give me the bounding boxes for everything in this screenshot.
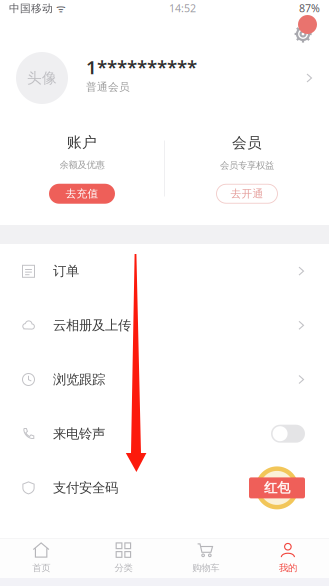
button[interactable]: 首页 bbox=[0, 538, 82, 578]
button[interactable]: 云相册及上传 bbox=[0, 298, 329, 352]
button[interactable]: 去开通 bbox=[216, 184, 277, 203]
button[interactable]: 浏览跟踪 bbox=[0, 352, 329, 407]
staticText: 1********** bbox=[86, 55, 197, 79]
staticText: 去充值 bbox=[65, 187, 98, 200]
staticText: 头像 bbox=[27, 69, 57, 87]
staticText: 红包 bbox=[264, 480, 290, 496]
staticText: 余额及优惠 bbox=[59, 159, 104, 171]
button[interactable]: 订单 bbox=[0, 244, 329, 298]
button[interactable]: 设置 bbox=[292, 15, 317, 45]
staticText: 会员专享权益 bbox=[220, 160, 274, 171]
button[interactable]: 支付安全码 bbox=[0, 461, 329, 515]
button[interactable]: 我的 bbox=[247, 538, 329, 578]
button[interactable]: 去充值 bbox=[49, 184, 115, 204]
staticText: 账户 bbox=[67, 133, 97, 151]
button[interactable]: 来电铃声 bbox=[0, 407, 329, 461]
staticText: 来电铃声 bbox=[53, 425, 105, 442]
staticText: 分类 bbox=[114, 562, 132, 574]
button[interactable]: 分类 bbox=[82, 538, 164, 578]
staticText: 普通会员 bbox=[86, 80, 130, 93]
staticText: 支付安全码 bbox=[53, 480, 118, 496]
staticText: 订单 bbox=[53, 263, 79, 279]
staticText: 去开通 bbox=[230, 187, 263, 200]
button[interactable]: 头像 bbox=[0, 44, 329, 112]
staticText: 首页 bbox=[32, 562, 50, 574]
staticText: 购物车 bbox=[192, 562, 219, 574]
staticText: 会员 bbox=[232, 134, 262, 152]
staticText: 浏览跟踪 bbox=[53, 371, 105, 388]
staticText: 中国移动 ᯤ bbox=[9, 1, 66, 15]
staticText: 云相册及上传 bbox=[53, 317, 131, 333]
staticText: 14:52 bbox=[169, 1, 196, 15]
button[interactable]: 购物车 bbox=[164, 538, 247, 578]
staticText: 87% bbox=[299, 1, 320, 15]
staticText: 我的 bbox=[279, 562, 297, 574]
